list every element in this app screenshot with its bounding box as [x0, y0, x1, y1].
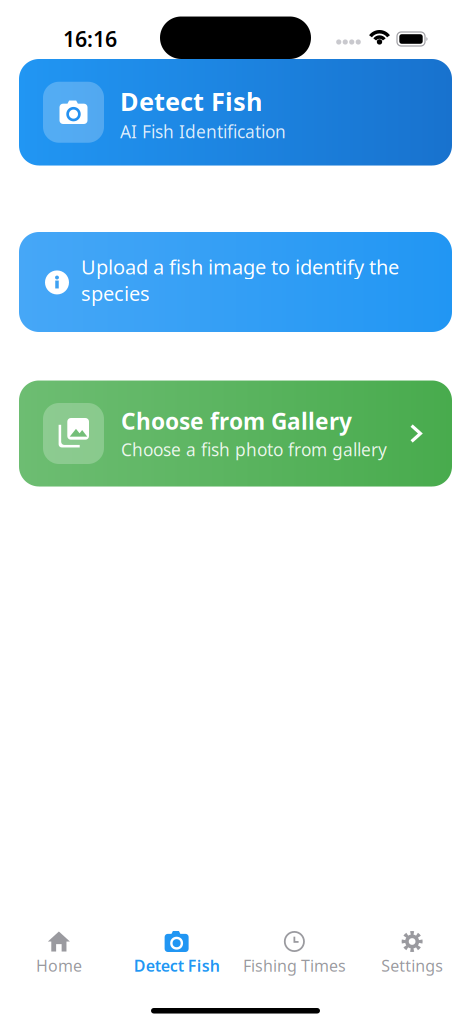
staticText: Detect Fish [120, 84, 262, 118]
button[interactable]: Settings [353, 928, 471, 995]
staticText: Fishing Times [243, 955, 346, 976]
button[interactable]: Detect Fish [118, 928, 236, 995]
button[interactable]: Fishing Times [235, 928, 353, 995]
staticText: Choose a fish photo from gallery [121, 438, 387, 461]
staticText: AI Fish Identification [120, 120, 286, 143]
staticText: Home [36, 955, 82, 976]
button[interactable]: Choose from Gallery [19, 380, 452, 486]
staticText: Settings [381, 955, 443, 976]
staticText: Choose from Gallery [121, 406, 352, 436]
staticText: 16:16 [63, 25, 117, 53]
button[interactable]: Home [0, 928, 118, 995]
staticText: Detect Fish [134, 955, 220, 976]
staticText: Upload a fish image to identify the spec… [81, 253, 399, 306]
